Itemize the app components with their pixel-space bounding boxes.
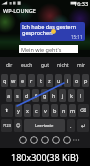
staticText: p — [84, 77, 88, 84]
staticText: Ich habe das gestern — [22, 23, 77, 30]
staticText: t — [40, 77, 42, 84]
other: More options — [73, 136, 81, 144]
button[interactable]: v — [42, 104, 49, 117]
staticText: mir — [77, 62, 86, 69]
staticText: a — [7, 92, 11, 99]
button[interactable]: Mein wie geht's — [19, 45, 78, 53]
button[interactable]: k — [68, 89, 75, 102]
staticText: i — [67, 77, 69, 84]
staticText: u — [57, 77, 61, 84]
button[interactable]: j — [59, 89, 66, 102]
button[interactable]: ☺ — [14, 119, 22, 132]
staticText: Leertaste — [35, 123, 54, 129]
staticText: ☺ — [16, 123, 21, 128]
staticText: x — [26, 107, 29, 114]
button[interactable]: Keyboard option — [52, 136, 60, 144]
button[interactable]: r — [28, 74, 35, 87]
staticText: 180x300(38 KiB) — [11, 151, 79, 163]
button[interactable]: ?123 — [1, 119, 12, 132]
button[interactable]: gut — [36, 57, 54, 73]
button[interactable]: x — [24, 104, 31, 117]
button[interactable]: y — [15, 104, 22, 117]
staticText: c — [35, 107, 38, 114]
staticText: nicht — [57, 62, 69, 69]
button[interactable]: nicht — [54, 57, 72, 73]
staticText: h — [52, 92, 56, 99]
button[interactable]: d — [23, 89, 30, 102]
button[interactable]: m — [69, 104, 76, 117]
button[interactable]: Keyboard option — [41, 136, 49, 144]
button[interactable]: g — [41, 89, 48, 102]
staticText: j — [62, 92, 64, 99]
button[interactable]: u — [55, 74, 62, 87]
staticText: g — [43, 92, 47, 99]
button[interactable]: q — [1, 74, 8, 87]
staticText: dir — [6, 62, 13, 69]
button[interactable]: i — [64, 74, 71, 87]
staticText: gesprochen — [22, 29, 53, 36]
staticText: m — [70, 107, 76, 114]
staticText: y — [17, 107, 20, 114]
button[interactable]: o — [73, 74, 80, 87]
staticText: b — [53, 107, 57, 114]
button[interactable]: dir — [0, 57, 18, 73]
staticText: v — [44, 107, 47, 114]
staticText: 16:33 — [74, 0, 89, 6]
button[interactable]: Keyboard option — [63, 136, 71, 144]
button[interactable]: z — [46, 74, 53, 87]
staticText: n — [62, 107, 66, 114]
staticText: . — [70, 122, 72, 129]
button[interactable]: euch — [18, 57, 36, 73]
staticText: 15:11 — [71, 34, 83, 40]
button[interactable]: mir — [72, 57, 90, 73]
staticText: k — [70, 92, 73, 99]
staticText: e — [21, 77, 25, 84]
button[interactable]: p — [82, 74, 89, 87]
button[interactable]: ⌫ — [78, 104, 89, 117]
staticText: r — [30, 77, 33, 84]
staticText: Mein wie geht's — [21, 46, 62, 53]
button[interactable]: e — [19, 74, 26, 87]
staticText: w — [11, 77, 16, 84]
staticText: WP-LOUNGE — [3, 7, 36, 14]
button[interactable]: t — [37, 74, 44, 87]
staticText: d — [25, 92, 29, 99]
staticText: q — [3, 77, 7, 84]
staticText: f — [35, 92, 37, 99]
button[interactable]: s — [14, 89, 21, 102]
button[interactable]: Keyboard option — [30, 136, 38, 144]
button[interactable]: ⬆ — [1, 104, 13, 117]
button[interactable]: ↵ — [77, 119, 89, 132]
button[interactable]: a — [6, 89, 12, 102]
button[interactable]: WP-LOUNGE — [0, 6, 90, 15]
button[interactable]: Keyboard option — [19, 136, 27, 144]
staticText: o — [75, 77, 79, 84]
button[interactable]: Ich habe das gestern — [20, 22, 85, 41]
button[interactable]: Leertaste — [24, 119, 65, 132]
staticText: gut — [41, 62, 49, 69]
staticText: ⬆ — [5, 108, 9, 113]
button[interactable]: b — [51, 104, 58, 117]
button[interactable]: h — [50, 89, 57, 102]
button[interactable]: w — [10, 74, 17, 87]
staticText: ↵ — [81, 123, 86, 129]
staticText: ?123 — [3, 123, 11, 128]
button[interactable]: f — [32, 89, 39, 102]
staticText: ⌫ — [80, 108, 87, 113]
staticText: z — [48, 77, 51, 84]
button[interactable]: . — [67, 119, 75, 132]
staticText: l — [80, 92, 82, 99]
button[interactable]: n — [60, 104, 67, 117]
button[interactable]: c — [33, 104, 40, 117]
staticText: s — [16, 92, 19, 99]
button[interactable]: l — [77, 89, 84, 102]
staticText: euch — [21, 62, 33, 69]
